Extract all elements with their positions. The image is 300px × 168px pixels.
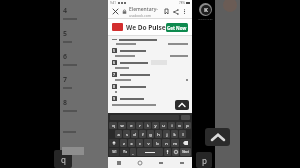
button[interactable]: Shift <box>109 139 119 147</box>
staticText: q <box>112 123 115 128</box>
staticText: k <box>173 132 176 137</box>
button[interactable]: !#1 <box>109 148 119 156</box>
staticText: 78% <box>179 1 185 5</box>
button[interactable]: t <box>144 122 151 129</box>
staticText: u <box>162 123 165 128</box>
staticText: Next <box>182 150 189 154</box>
staticText: q <box>61 154 66 165</box>
staticText: v <box>147 141 150 146</box>
button[interactable]: p <box>184 122 191 129</box>
button[interactable]: Bookmark <box>162 7 171 16</box>
staticText: w <box>120 123 124 128</box>
button[interactable]: c <box>136 139 143 147</box>
staticText: 9:41 <box>110 1 116 5</box>
button[interactable]: Scroll up <box>175 100 189 110</box>
staticText: 9 <box>113 96 116 101</box>
staticText: 4 <box>63 6 68 16</box>
button[interactable]: j <box>163 130 170 138</box>
button[interactable]: Next <box>180 148 191 156</box>
staticText: p <box>202 155 207 166</box>
staticText: !#1 <box>112 150 117 154</box>
button[interactable]: q <box>109 122 117 129</box>
button[interactable]: Voice input <box>164 148 171 156</box>
staticText: t <box>147 123 149 128</box>
button[interactable]: Back <box>150 157 171 168</box>
staticText: 7 <box>113 72 116 77</box>
staticText: 5 <box>113 48 116 53</box>
staticText: p <box>186 123 189 128</box>
staticText: m <box>173 141 177 146</box>
button[interactable]: More options <box>180 7 189 16</box>
button[interactable]: Backspace <box>180 139 191 147</box>
staticText: 5 <box>63 29 68 39</box>
staticText: i <box>171 123 173 128</box>
staticText: 7 <box>63 75 68 85</box>
staticText: Elementary-grammar-e… <box>129 6 162 13</box>
button[interactable]: Home <box>129 157 150 168</box>
button[interactable]: g <box>147 130 154 138</box>
button[interactable]: f <box>139 130 146 138</box>
button[interactable]: Settings <box>172 148 179 156</box>
staticText: x <box>130 141 133 146</box>
button[interactable]: n <box>162 139 170 147</box>
staticText: f <box>142 132 144 137</box>
button[interactable]: m <box>171 139 179 147</box>
staticText: We Do Pulse <box>126 23 166 32</box>
staticText: n <box>165 141 168 146</box>
button[interactable]: i <box>168 122 175 129</box>
staticText: r <box>139 123 141 128</box>
button[interactable]: x <box>128 139 135 147</box>
button[interactable]: h <box>155 130 162 138</box>
staticText: z <box>123 141 125 146</box>
staticText: 8 <box>63 98 68 108</box>
button[interactable]: r <box>136 122 143 129</box>
button[interactable]: y <box>152 122 159 129</box>
staticText: 6 <box>63 52 68 62</box>
button[interactable]: v <box>144 139 152 147</box>
staticText: o <box>178 123 181 128</box>
button[interactable]: , <box>130 148 136 156</box>
staticText: g <box>149 132 152 137</box>
button[interactable]: b <box>153 139 161 147</box>
staticText: c <box>139 141 141 146</box>
staticText: , <box>132 150 134 155</box>
staticText: a <box>117 132 120 137</box>
button[interactable]: s <box>123 130 130 138</box>
button[interactable]: Close <box>111 7 120 16</box>
staticText: e <box>130 123 133 128</box>
button[interactable]: Hide keyboard <box>171 157 192 168</box>
staticText: l <box>182 132 184 137</box>
staticText: h <box>157 132 160 137</box>
staticText: 6 <box>113 60 116 65</box>
button[interactable]: ?!± <box>120 148 129 156</box>
button[interactable]: d <box>131 130 138 138</box>
button[interactable]: o <box>176 122 183 129</box>
button[interactable]: e <box>127 122 135 129</box>
button[interactable]: k <box>171 130 178 138</box>
staticText: j <box>166 132 168 137</box>
button[interactable]: Get Now <box>166 23 188 32</box>
button[interactable]: Space <box>137 148 163 156</box>
staticText: s <box>126 132 128 137</box>
staticText: K <box>204 6 208 14</box>
staticText: d <box>133 132 136 137</box>
button[interactable]: l <box>179 130 186 138</box>
staticText: 8 <box>113 84 116 89</box>
button[interactable]: z <box>120 139 127 147</box>
staticText: usabook.com <box>129 13 152 18</box>
button[interactable]: u <box>160 122 167 129</box>
staticText: y <box>154 123 157 128</box>
staticText: Get Now <box>167 25 187 31</box>
staticText: b <box>156 141 159 146</box>
staticText: MRGHAZEE <box>198 17 213 20</box>
staticText: ?!± <box>123 150 127 154</box>
button[interactable]: w <box>118 122 126 129</box>
button[interactable]: Recents <box>108 157 129 168</box>
button[interactable]: Share <box>171 7 180 16</box>
button[interactable]: a <box>115 130 122 138</box>
